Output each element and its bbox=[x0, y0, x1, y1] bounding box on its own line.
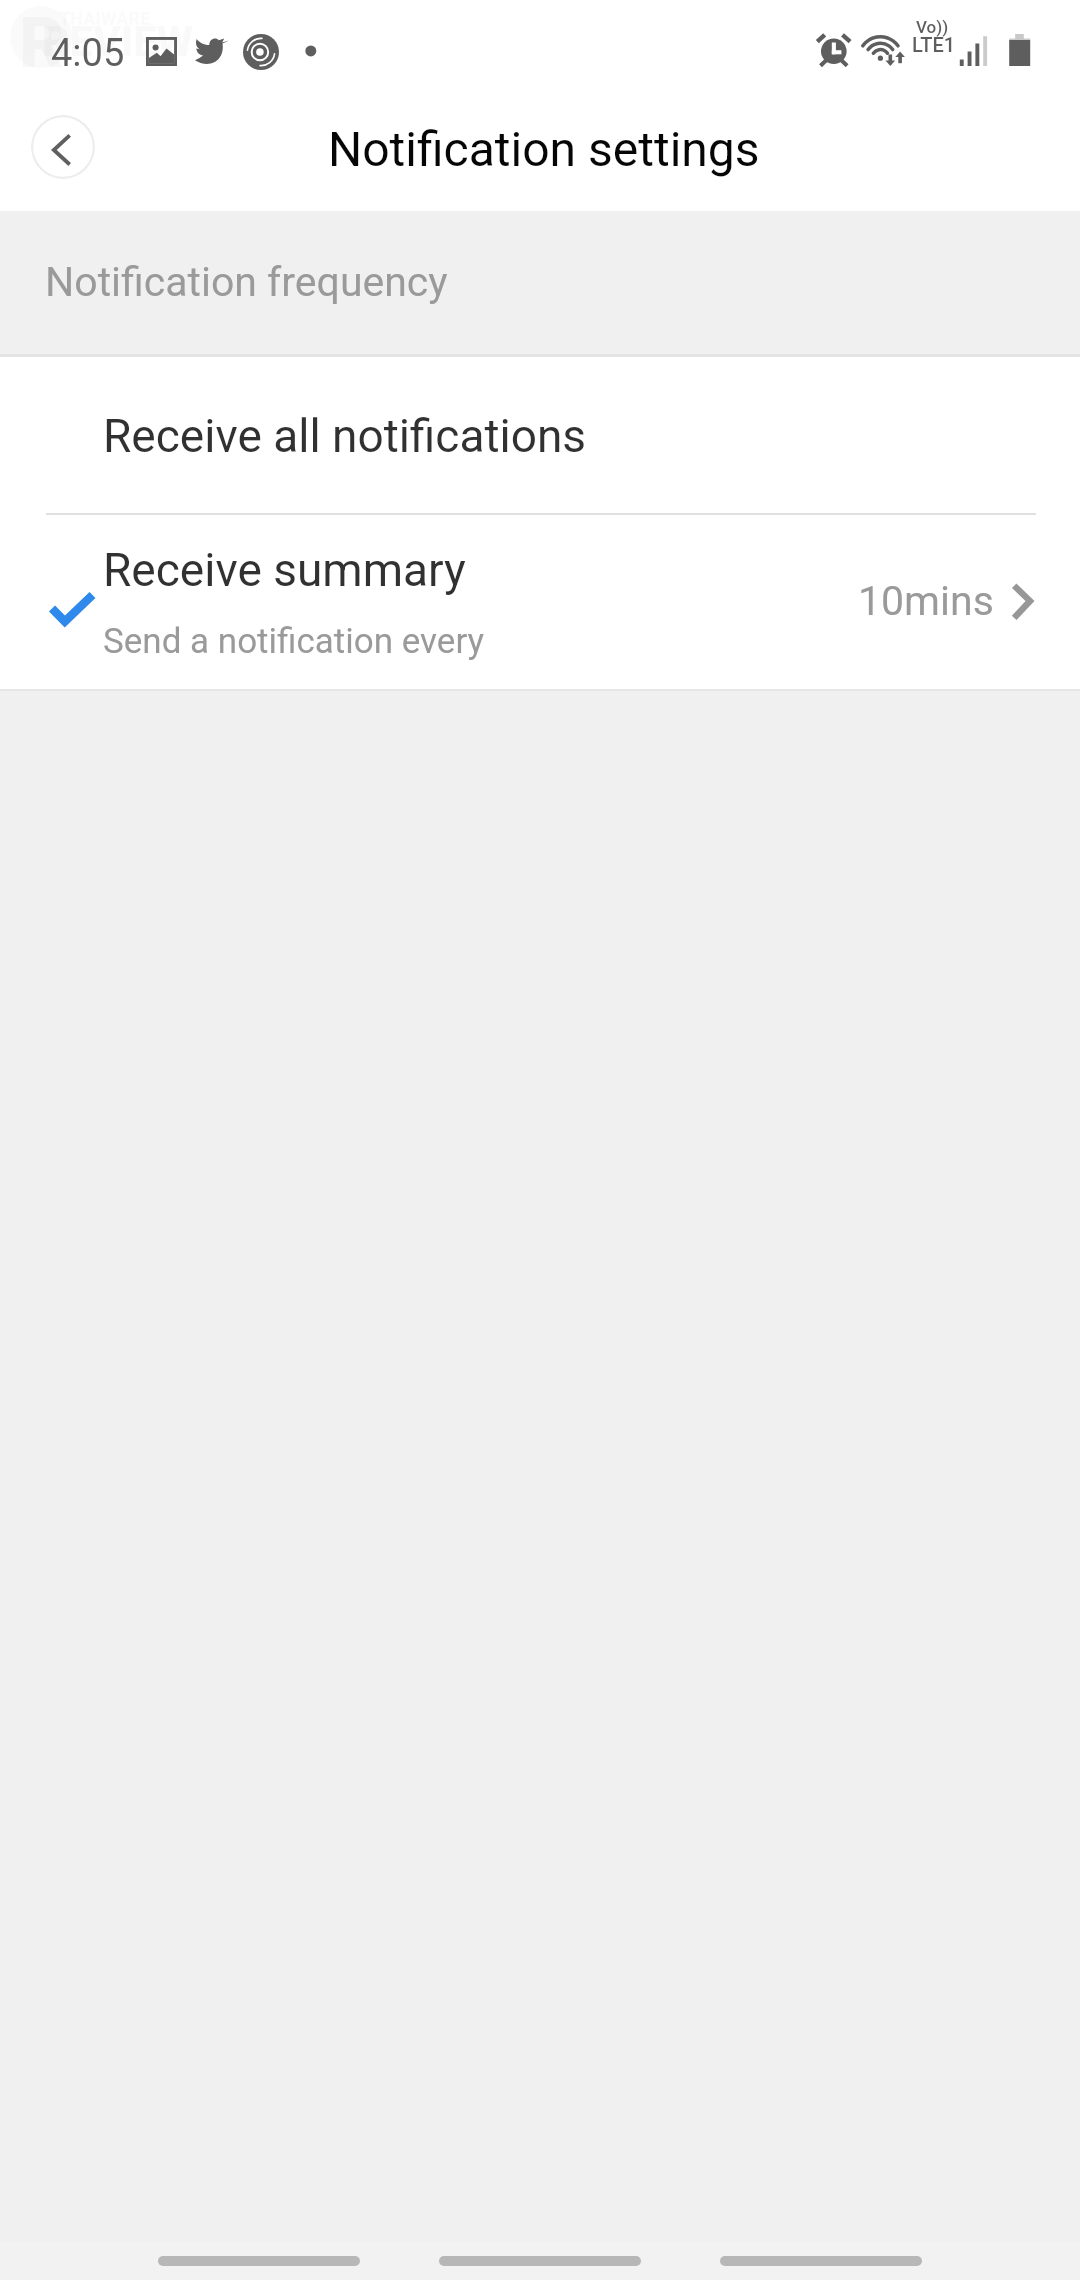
button[interactable]: Receive summary bbox=[0, 515, 1080, 690]
staticText: Receive all notifications bbox=[103, 409, 587, 463]
button[interactable]: Recent apps bbox=[158, 2256, 360, 2266]
staticText: Notification settings bbox=[328, 121, 760, 177]
staticText: REVIEW bbox=[42, 17, 194, 66]
staticText: LTE1 bbox=[912, 33, 956, 56]
staticText: Notification frequency bbox=[45, 258, 448, 306]
staticText: Send a notification every bbox=[103, 621, 485, 662]
button[interactable]: Back bbox=[720, 2256, 922, 2266]
staticText: 10mins bbox=[858, 577, 994, 625]
button[interactable]: Back bbox=[31, 115, 95, 179]
button[interactable]: Home bbox=[439, 2256, 641, 2266]
staticText: 4:05 bbox=[51, 31, 125, 76]
button[interactable]: Receive all notifications bbox=[0, 357, 1080, 514]
button[interactable]: 10mins bbox=[850, 565, 1044, 641]
staticText: Receive summary bbox=[103, 543, 466, 597]
staticText: R bbox=[19, 2, 65, 84]
staticText: Vo)) bbox=[916, 17, 949, 37]
